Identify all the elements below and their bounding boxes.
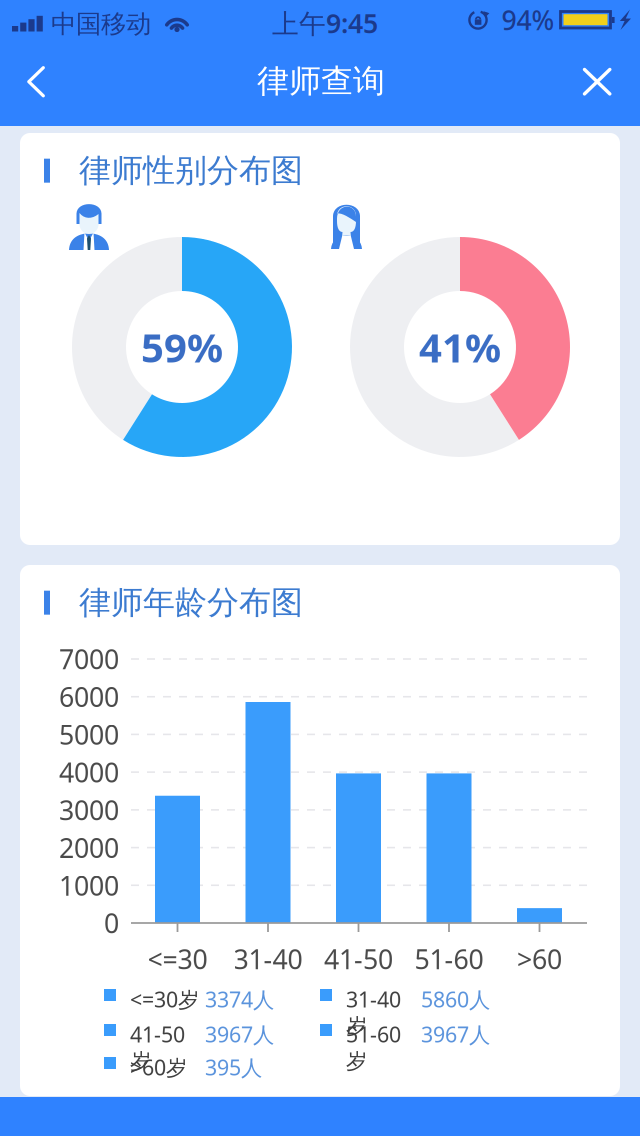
staticText: 0 bbox=[104, 905, 119, 941]
staticText: 3374人 bbox=[205, 985, 274, 1013]
staticText: 3000 bbox=[59, 792, 119, 828]
staticText: 上午9:45 bbox=[272, 5, 378, 41]
staticText: 2000 bbox=[59, 830, 119, 865]
button[interactable]: Back bbox=[0, 48, 76, 126]
staticText: 395人 bbox=[205, 1053, 262, 1081]
staticText: 6000 bbox=[59, 679, 119, 714]
button[interactable]: Close bbox=[563, 48, 639, 126]
staticText: 51-60 bbox=[414, 941, 483, 977]
staticText: 51-60岁 bbox=[346, 1020, 401, 1074]
staticText: <=30 bbox=[147, 941, 207, 977]
staticText: 律师性别分布图 bbox=[79, 151, 303, 190]
staticText: 5860人 bbox=[421, 985, 490, 1013]
staticText: 4000 bbox=[59, 754, 119, 790]
staticText: 94% bbox=[501, 2, 554, 38]
staticText: 41-50岁 bbox=[130, 1020, 185, 1074]
staticText: 律师查询 bbox=[257, 61, 385, 101]
staticText: >60岁 bbox=[130, 1053, 187, 1081]
staticText: >60 bbox=[517, 941, 562, 977]
staticText: 31-40岁 bbox=[346, 985, 401, 1039]
staticText: 中国移动 bbox=[51, 8, 151, 39]
staticText: 3967人 bbox=[205, 1020, 274, 1048]
staticText: 31-40 bbox=[233, 941, 302, 977]
staticText: 41-50 bbox=[324, 941, 393, 977]
staticText: 5000 bbox=[59, 717, 119, 752]
staticText: <=30岁 bbox=[130, 985, 199, 1013]
staticText: 3967人 bbox=[421, 1020, 490, 1048]
staticText: 1000 bbox=[59, 868, 119, 903]
staticText: 41% bbox=[419, 320, 501, 373]
staticText: 59% bbox=[141, 320, 223, 373]
staticText: 律师年龄分布图 bbox=[79, 583, 303, 622]
staticText: 7000 bbox=[59, 641, 119, 677]
